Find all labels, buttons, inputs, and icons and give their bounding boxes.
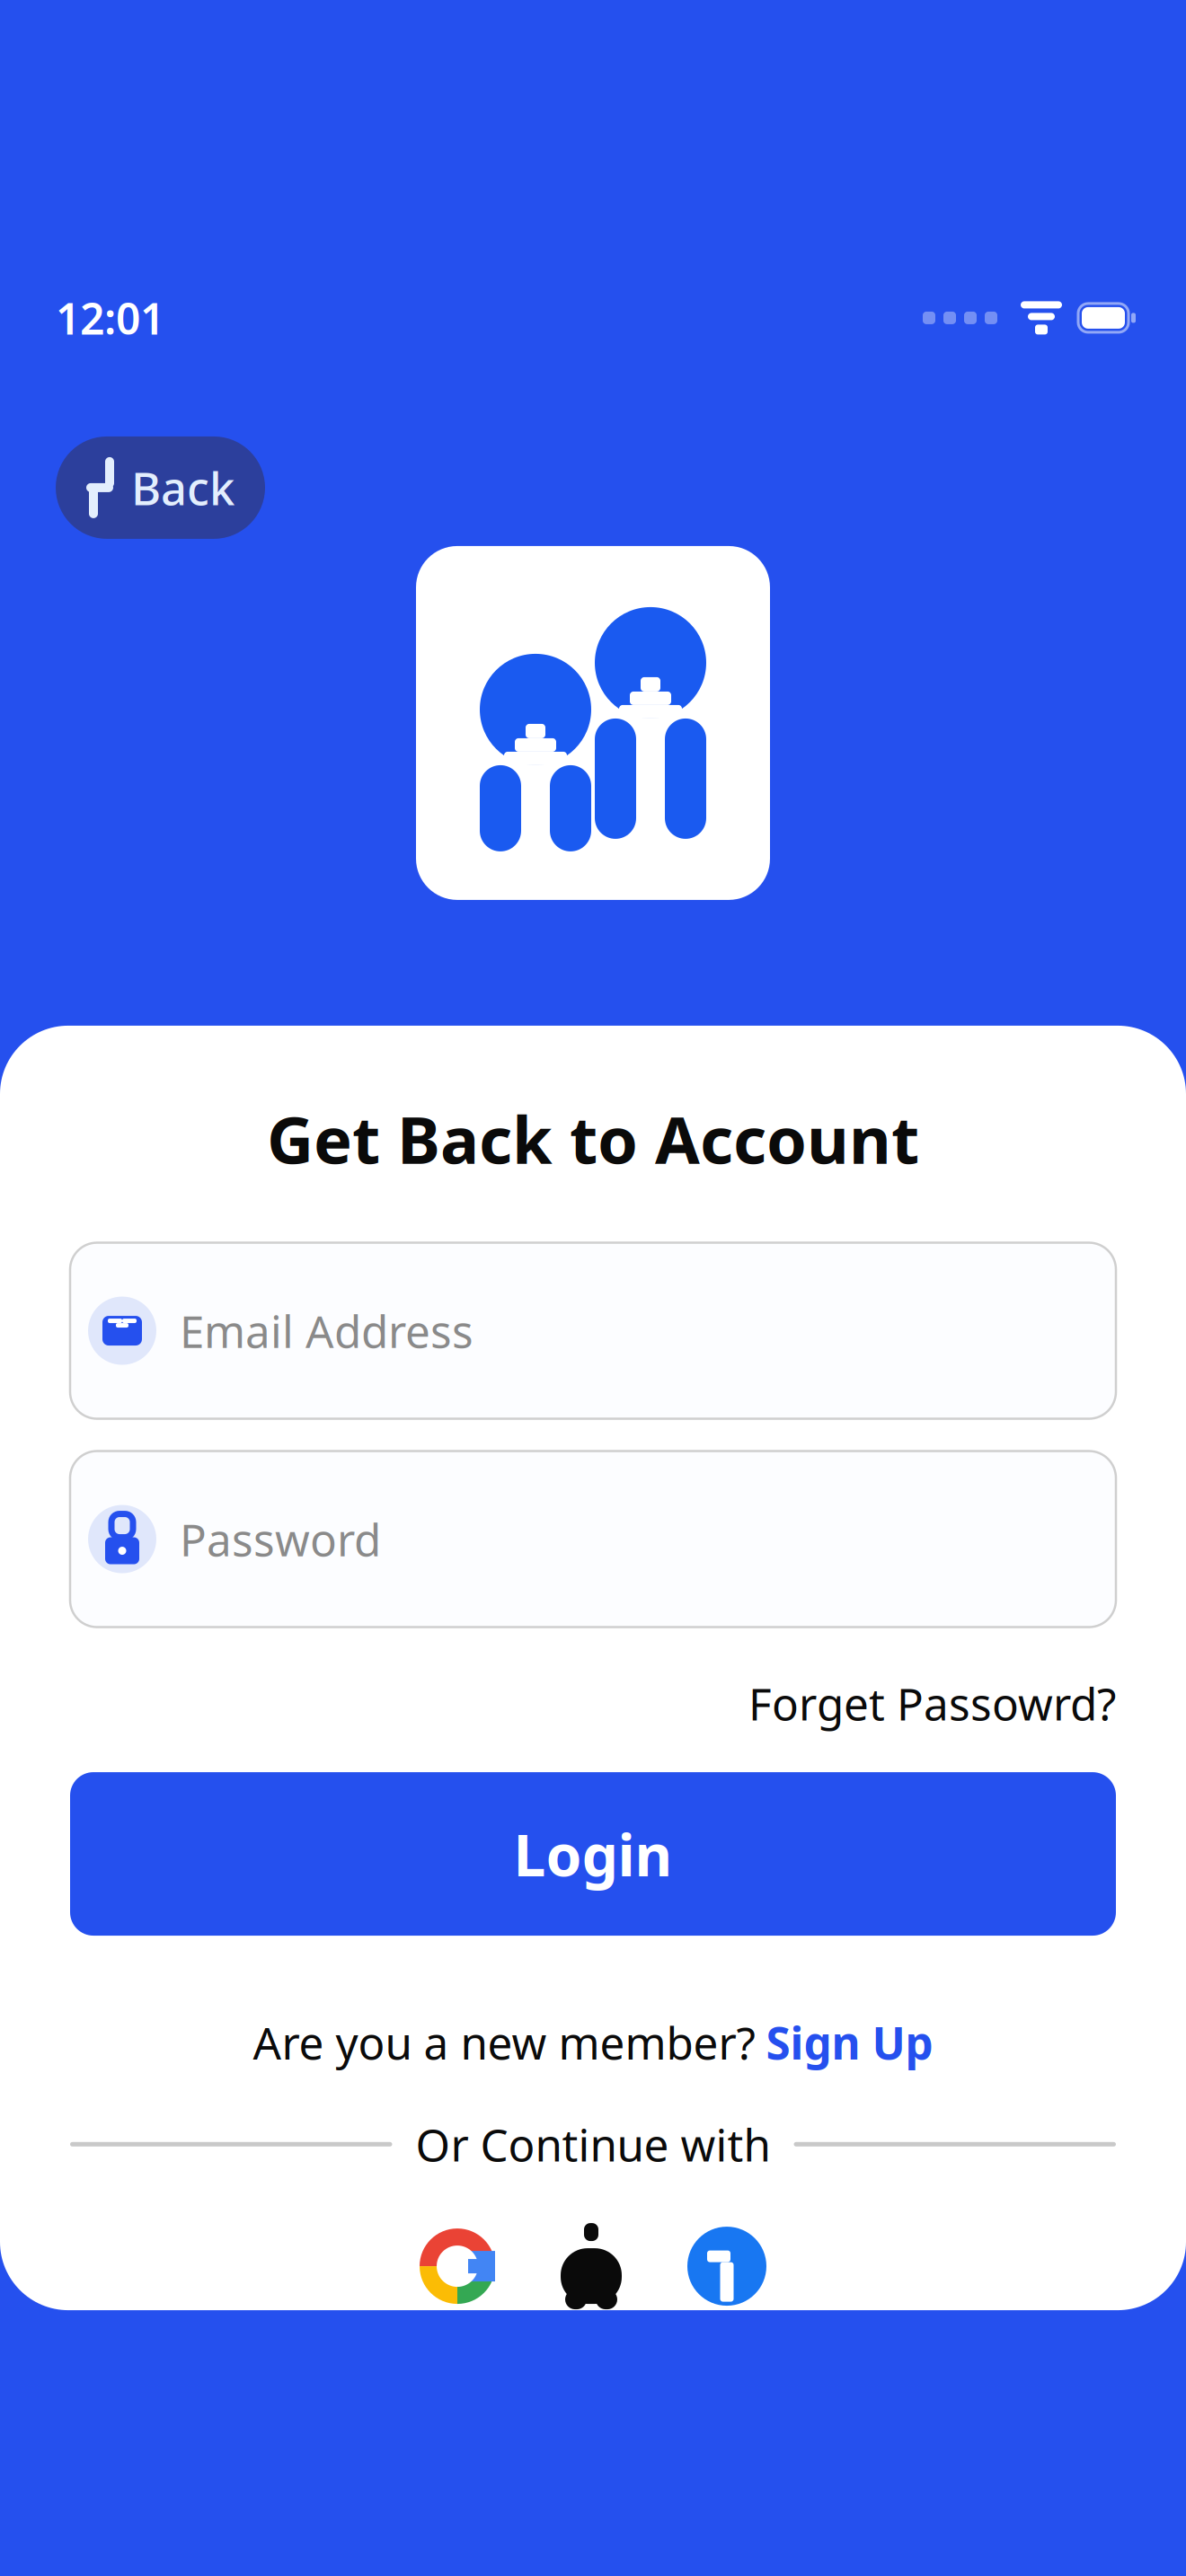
button[interactable]: Forget Passowrd? [748, 1674, 1116, 1733]
button[interactable]: Back [56, 436, 265, 539]
staticText: Login [513, 1816, 673, 1892]
staticText: Forget Passowrd? [748, 1674, 1116, 1733]
button[interactable]: Continue with Apple [558, 2222, 624, 2310]
button[interactable]: Login [70, 1772, 1116, 1936]
staticText: Get Back to Account [267, 1096, 919, 1182]
button[interactable]: Continue with Facebook [687, 2227, 766, 2306]
button[interactable]: Email Address [70, 1243, 1116, 1419]
staticText: 12:01 [56, 289, 164, 347]
staticText: Email Address [180, 1301, 474, 1360]
button[interactable]: Sign Up [766, 2013, 933, 2072]
staticText: Or Continue with [416, 2115, 770, 2174]
staticText: Password [180, 1510, 381, 1569]
button[interactable]: Continue with Google [420, 2228, 495, 2304]
staticText: Back [131, 457, 235, 518]
staticText: Sign Up [766, 2013, 933, 2072]
staticText: Are you a new member? [253, 2013, 755, 2072]
button[interactable]: Password [70, 1451, 1116, 1627]
